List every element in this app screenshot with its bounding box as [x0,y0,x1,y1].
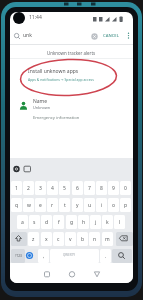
button[interactable]: unk [10,28,133,44]
staticText: m [105,236,110,243]
staticText: l [119,219,121,226]
staticText: p [124,202,128,209]
staticText: Emergency information [33,115,80,121]
staticText: Unknown tracker alerts [47,50,96,56]
button[interactable]: 1 [11,181,22,195]
button[interactable]: 5 [59,181,70,195]
button[interactable]: 6 [72,181,83,195]
button[interactable]: s [29,215,40,229]
button[interactable]: q [11,198,22,212]
staticText: 4 [51,185,54,192]
button[interactable]: b [77,232,88,246]
button[interactable]: Name [33,98,51,110]
staticText: 5 [63,185,66,192]
staticText: j [95,219,97,226]
button[interactable]: l [114,215,125,229]
button[interactable]: 4 [47,181,58,195]
button[interactable]: ?123 [11,249,25,263]
staticText: ?123 [15,254,22,258]
button[interactable]: u [84,198,95,212]
staticText: 9 [112,185,115,192]
button[interactable]: f [53,215,64,229]
staticText: 3 [39,185,42,192]
staticText: z [32,236,35,243]
staticText: 2 [27,185,30,192]
staticText: . [105,253,107,260]
button[interactable]: m [102,232,113,246]
staticText: o [112,202,116,209]
staticText: unk [23,32,32,39]
staticText: , [43,253,45,260]
staticText: 11:44 [29,14,42,21]
button[interactable]: n [89,232,100,246]
staticText: Install unknown apps [28,68,79,75]
button[interactable]: . [100,249,111,263]
staticText: i [101,202,103,209]
staticText: 8 [100,185,103,192]
button[interactable]: r [47,198,58,212]
staticText: Name [33,98,48,105]
button[interactable]: h [78,215,89,229]
staticText: g [70,219,74,226]
button[interactable] [11,232,27,246]
staticText: q [15,202,19,209]
staticText: t [64,202,66,209]
staticText: k [106,219,109,226]
button[interactable]: a [17,215,28,229]
staticText: h [82,219,86,226]
staticText: f [58,219,60,226]
staticText: Apps & notifications → Special app acces… [28,77,94,82]
staticText: 7 [88,185,91,192]
staticText: x [45,236,48,243]
staticText: r [51,202,54,209]
staticText: y [76,202,79,209]
button[interactable]: 3 [35,181,46,195]
button[interactable]: Install unknown apps [28,68,94,80]
staticText: a [21,219,24,226]
staticText: s [33,219,36,226]
staticText: 6 [76,185,79,192]
button[interactable]: w [23,198,34,212]
button[interactable]: 0 [120,181,131,195]
button[interactable]: z [28,232,39,246]
staticText: CANCEL [103,33,119,39]
staticText: c [57,236,60,243]
button[interactable]: j [90,215,101,229]
button[interactable]: 8 [96,181,107,195]
button[interactable]: , [38,249,49,263]
button[interactable]: 7 [84,181,95,195]
staticText: 0 [124,185,127,192]
button[interactable]: 2 [23,181,34,195]
button[interactable]: p [120,198,131,212]
button[interactable]: Emergency information [33,115,80,121]
button[interactable]: CANCEL [103,33,119,39]
staticText: e [39,202,42,209]
button[interactable]: i [96,198,107,212]
staticText: n [93,236,97,243]
staticText: u [88,202,92,209]
button[interactable]: c [53,232,64,246]
staticText: b [81,236,85,243]
button[interactable] [116,232,133,246]
button[interactable] [50,249,99,263]
button[interactable]: g [66,215,77,229]
button[interactable]: 9 [108,181,119,195]
button[interactable]: y [72,198,83,212]
staticText: w [27,202,31,209]
staticText: v [69,236,72,243]
staticText: QWERTY [63,253,76,257]
staticText: d [45,219,49,226]
button[interactable]: o [108,198,119,212]
button[interactable]: v [65,232,76,246]
button[interactable] [112,249,132,263]
button[interactable]: k [102,215,113,229]
staticText: 1 [15,185,18,192]
button[interactable]: x [41,232,52,246]
staticText: Unknown [33,105,51,110]
button[interactable]: e [35,198,46,212]
button[interactable]: d [41,215,52,229]
button[interactable]: t [59,198,70,212]
